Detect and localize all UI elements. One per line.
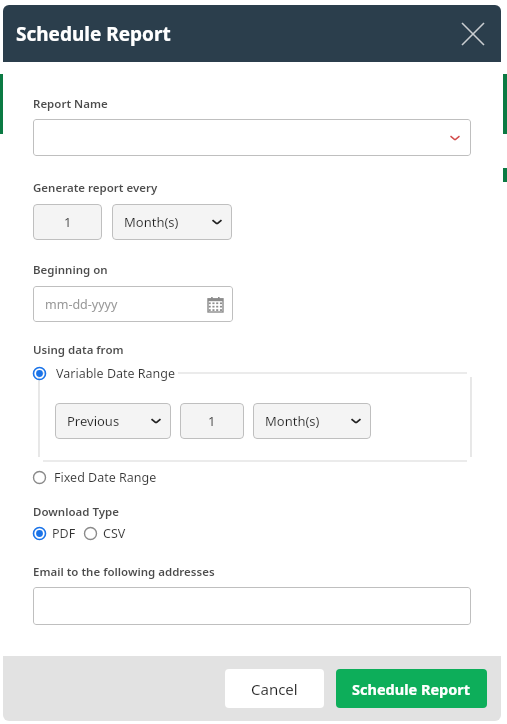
button[interactable]: Close	[457, 18, 489, 50]
staticText: Fixed Date Range	[54, 469, 157, 486]
staticText: Beginning on	[33, 262, 108, 278]
button[interactable]: Variable Date Range	[33, 365, 178, 382]
staticText: Variable Date Range	[56, 365, 176, 382]
button[interactable]: Schedule Report	[336, 669, 487, 708]
staticText: Cancel	[251, 679, 298, 699]
button[interactable]: Fixed Date Range	[33, 469, 157, 486]
button[interactable]: 1	[33, 204, 102, 240]
staticText: Month(s)	[124, 213, 179, 231]
button[interactable]: mm-dd-yyyy	[33, 286, 233, 322]
staticText: Generate report every	[33, 180, 158, 196]
button[interactable]: PDF	[33, 525, 76, 542]
staticText: 1	[64, 213, 72, 231]
staticText: CSV	[103, 525, 126, 542]
staticText: Month(s)	[265, 412, 320, 430]
button[interactable]: Previous	[55, 403, 171, 439]
staticText: Download Type	[33, 504, 119, 520]
staticText: Schedule Report	[16, 21, 171, 47]
staticText: Schedule Report	[352, 679, 471, 699]
button[interactable]: Month(s)	[253, 403, 371, 439]
button[interactable]: Month(s)	[112, 204, 232, 240]
button[interactable]: 1	[180, 403, 244, 439]
staticText: Using data from	[33, 342, 124, 358]
staticText: Email to the following addresses	[33, 564, 215, 580]
staticText: PDF	[52, 525, 76, 542]
staticText: 1	[208, 412, 216, 430]
staticText: Previous	[67, 412, 120, 430]
button[interactable]	[33, 587, 471, 625]
button[interactable]: Cancel	[225, 669, 324, 708]
button[interactable]: CSV	[84, 525, 126, 542]
button[interactable]	[33, 119, 471, 156]
staticText: mm-dd-yyyy	[45, 296, 118, 313]
staticText: Report Name	[33, 96, 108, 112]
